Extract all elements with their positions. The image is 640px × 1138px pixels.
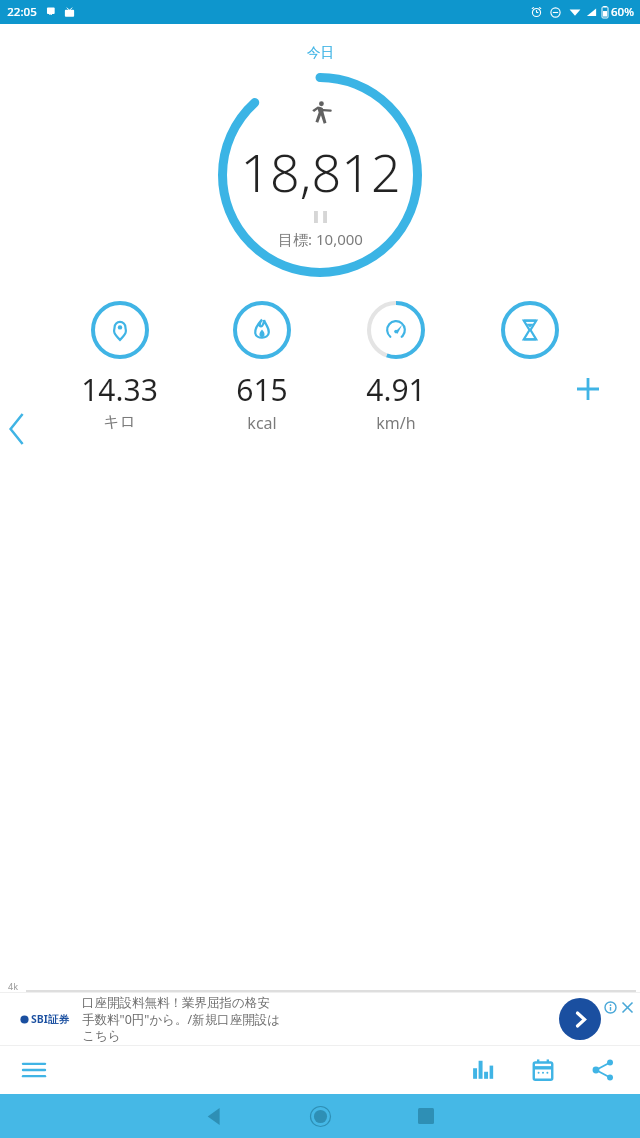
button[interactable]: Duration	[497, 301, 563, 427]
staticText: 口座開設料無料！業界屈指の格安	[82, 995, 270, 1011]
staticText: kcal	[247, 412, 277, 434]
staticText: 4.91	[366, 369, 426, 410]
staticText: 目標: 10,000	[278, 229, 363, 249]
staticText: 18,812	[240, 136, 401, 207]
staticText: 今日	[307, 44, 334, 61]
button[interactable]: 615 kcal	[229, 301, 295, 434]
button[interactable]: Close ad	[621, 1001, 634, 1014]
button[interactable]: Open ad	[559, 998, 601, 1040]
staticText: 60%	[611, 4, 634, 20]
button[interactable]: Add	[559, 360, 616, 417]
button[interactable]: 18,812	[218, 73, 422, 277]
staticText: 4k	[8, 980, 18, 992]
button[interactable]: Share	[580, 1047, 626, 1093]
button[interactable]: Menu	[12, 1048, 56, 1092]
button[interactable]: Statistics	[460, 1047, 506, 1093]
button[interactable]: 14.33 キロ	[77, 301, 162, 432]
button[interactable]: Home	[288, 1094, 352, 1138]
button[interactable]: 今日	[295, 42, 346, 63]
staticText: こちら	[82, 1028, 121, 1044]
staticText: 手数料"0円"から。/新規口座開設は	[82, 1011, 280, 1028]
staticText: 22:05	[7, 4, 37, 20]
button[interactable]: Back	[182, 1094, 246, 1138]
button[interactable]: Previous day	[0, 404, 34, 454]
button[interactable]: Ad info	[604, 1001, 617, 1014]
staticText: km/h	[376, 412, 416, 434]
button[interactable]: 4.91 km/h	[362, 301, 430, 434]
button[interactable]: Recent apps	[394, 1094, 458, 1138]
staticText: SBI証券	[31, 1012, 69, 1026]
staticText: キロ	[103, 412, 136, 432]
button[interactable]: Calendar	[520, 1047, 566, 1093]
button[interactable]: SBI証券	[0, 992, 640, 1046]
staticText: 14.33	[81, 369, 158, 410]
staticText: 615	[236, 369, 288, 410]
